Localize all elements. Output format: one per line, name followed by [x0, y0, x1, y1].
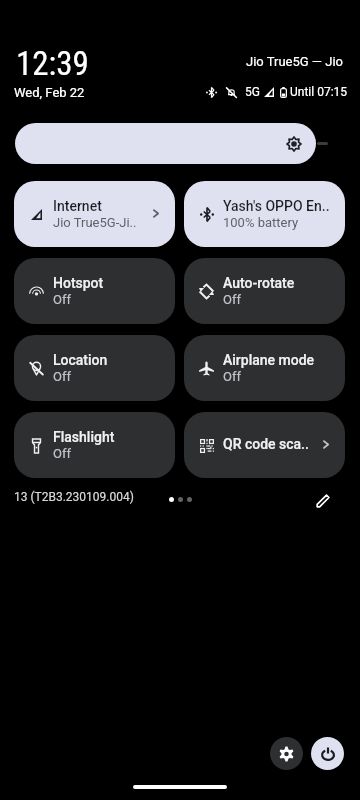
staticText: Off	[53, 369, 71, 384]
button[interactable]: Settings	[270, 737, 303, 770]
button[interactable]: Internet	[14, 181, 175, 247]
staticText: QR code sca..	[223, 436, 309, 452]
button[interactable]: QR code sca..	[184, 412, 345, 478]
staticText: Off	[53, 292, 71, 307]
staticText: Flashlight	[53, 429, 115, 445]
button[interactable]: Airplane mode	[184, 335, 345, 401]
button[interactable]: Location	[14, 335, 175, 401]
staticText: Internet	[53, 198, 102, 214]
staticText: Location	[53, 352, 108, 368]
staticText: Until 07:15	[290, 85, 348, 99]
staticText: Hotspot	[53, 275, 104, 291]
staticText: 5G	[245, 85, 260, 99]
staticText: Jio True5G-Ji..	[53, 215, 137, 230]
staticText: Auto-rotate	[223, 275, 295, 291]
staticText: Off	[223, 369, 241, 384]
button[interactable]: Yash's OPPO En..	[184, 181, 345, 247]
button[interactable]: Flashlight	[14, 412, 175, 478]
staticText: Yash's OPPO En..	[223, 198, 330, 214]
button[interactable]: Brightness	[15, 123, 316, 164]
staticText: Off	[223, 292, 241, 307]
button[interactable]: Hotspot	[14, 258, 175, 324]
button[interactable]: Edit tiles	[311, 488, 336, 513]
staticText: 13 (T2B3.230109.004)	[14, 490, 134, 504]
staticText: Wed, Feb 22	[14, 85, 85, 100]
staticText: Airplane mode	[223, 352, 315, 368]
staticText: Off	[53, 446, 71, 461]
staticText: 12:39	[16, 44, 89, 83]
staticText: 100% battery	[223, 215, 299, 230]
button[interactable]: Power	[311, 737, 344, 770]
button[interactable]: Auto-rotate	[184, 258, 345, 324]
staticText: Jio True5G — Jio	[246, 54, 343, 69]
